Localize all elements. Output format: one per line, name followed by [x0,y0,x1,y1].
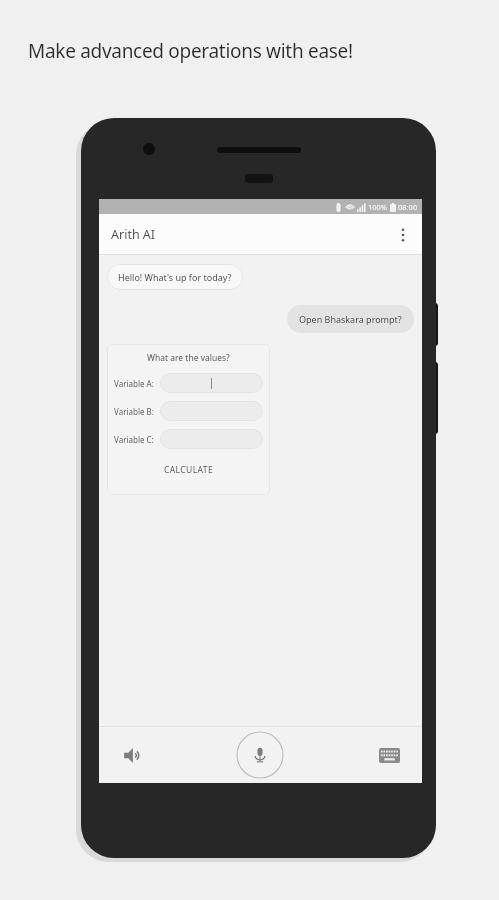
staticText: Open Bhaskara prompt? [299,313,402,325]
staticText: Hello! What's up for today? [118,271,232,283]
staticText: Variable B: [114,406,160,417]
button[interactable] [160,401,263,421]
button[interactable]: CALCULATE [154,460,224,480]
staticText: 100% [368,202,388,212]
button[interactable]: Open Bhaskara prompt? [287,305,414,333]
staticText: Arith AI [111,226,156,243]
staticText: Variable A: [114,378,160,389]
staticText: 08:00 [398,202,418,212]
button[interactable]: Hello! What's up for today? [107,264,243,290]
staticText: What are the values? [147,352,230,364]
button[interactable]: More options [389,221,417,249]
button[interactable] [160,429,263,449]
button[interactable]: Voice input [236,731,284,779]
staticText: Make advanced operations with ease! [28,38,353,64]
staticText: CALCULATE [164,464,214,476]
staticText: Variable C: [114,434,160,445]
button[interactable] [160,373,263,393]
button[interactable]: Sound [115,738,149,772]
button[interactable]: Keyboard [372,738,406,772]
